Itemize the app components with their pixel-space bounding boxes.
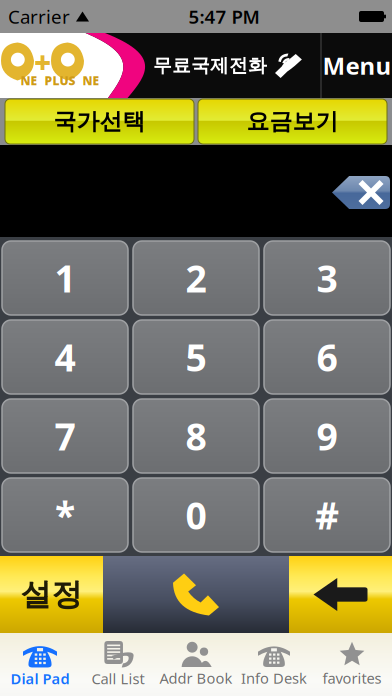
staticText: 0 — [185, 490, 206, 540]
staticText: 6 — [316, 332, 337, 382]
staticText: Addr Book — [159, 668, 232, 688]
button[interactable]: 8 — [133, 399, 259, 473]
button[interactable]: 요금보기 — [198, 99, 387, 144]
button[interactable]: 0 — [133, 478, 259, 552]
staticText: 국가선택 — [53, 108, 145, 135]
button[interactable]: favorites — [313, 633, 391, 695]
staticText: favorites — [322, 668, 381, 688]
button[interactable]: 2 — [133, 241, 259, 315]
button[interactable]: 3 — [264, 241, 390, 315]
button[interactable]: 7 — [2, 399, 128, 473]
staticText: 5 — [185, 332, 206, 382]
staticText: 5:47 PM — [188, 4, 259, 29]
staticText: Call List — [91, 669, 144, 688]
staticText: 무료국제전화 — [153, 54, 267, 77]
staticText: 요금보기 — [246, 108, 338, 135]
button[interactable]: Delete — [332, 176, 390, 209]
staticText: 9 — [316, 411, 337, 461]
button[interactable]: 4 — [2, 320, 128, 394]
button[interactable]: Call List — [79, 633, 157, 695]
staticText: PLUS — [44, 73, 75, 88]
staticText: Info Desk — [241, 668, 307, 688]
button[interactable]: Addr Book — [157, 633, 235, 695]
staticText: 4 — [54, 332, 75, 382]
staticText: + — [34, 42, 51, 81]
staticText: * — [55, 490, 75, 540]
button[interactable]: Back — [289, 556, 392, 633]
button[interactable]: * — [2, 478, 128, 552]
button[interactable]: 국가선택 — [5, 99, 194, 144]
staticText: Carrier — [8, 4, 70, 29]
staticText: 7 — [54, 411, 75, 461]
staticText: 8 — [185, 411, 206, 461]
staticText: Menu — [322, 50, 391, 81]
staticText: Dial Pad — [10, 669, 69, 688]
staticText: NE — [82, 73, 99, 88]
button[interactable]: 9 — [264, 399, 390, 473]
button[interactable]: Menu — [322, 33, 392, 98]
button[interactable]: # — [264, 478, 390, 552]
staticText: 설정 — [20, 576, 82, 613]
staticText: 1 — [54, 253, 75, 303]
staticText: 2 — [185, 253, 206, 303]
staticText: # — [315, 490, 339, 540]
staticText: NE — [20, 73, 37, 88]
button[interactable]: 1 — [2, 241, 128, 315]
button[interactable]: 설정 — [0, 556, 103, 633]
button[interactable]: Dial Pad — [1, 633, 79, 695]
staticText: 3 — [316, 253, 337, 303]
button[interactable]: Call — [146, 556, 246, 633]
button[interactable]: 5 — [133, 320, 259, 394]
button[interactable]: 6 — [264, 320, 390, 394]
button[interactable]: Info Desk — [235, 633, 313, 695]
